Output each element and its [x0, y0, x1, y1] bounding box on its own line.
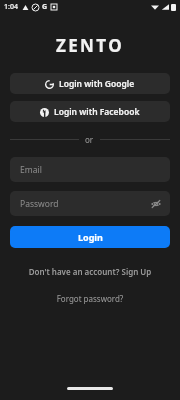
button[interactable]: Login with Facebook [10, 101, 170, 122]
staticText: 1:04 [4, 2, 18, 12]
staticText: Login [78, 231, 103, 243]
staticText: ZENTO [0, 34, 180, 57]
button[interactable]: Show password [150, 198, 162, 210]
button[interactable]: Login with Google [10, 73, 170, 94]
staticText: G [42, 2, 48, 12]
staticText: Email [20, 164, 42, 176]
staticText: Login with Google [59, 78, 135, 90]
staticText: Password [20, 198, 59, 210]
staticText: or [85, 134, 94, 145]
button[interactable]: Forgot password? [0, 289, 180, 308]
button[interactable]: Password [10, 191, 170, 216]
button[interactable]: Email [10, 157, 170, 182]
staticText: Login with Facebook [54, 106, 140, 118]
button[interactable]: Login [10, 226, 170, 248]
button[interactable]: Don't have an account? Sign Up [0, 262, 180, 281]
